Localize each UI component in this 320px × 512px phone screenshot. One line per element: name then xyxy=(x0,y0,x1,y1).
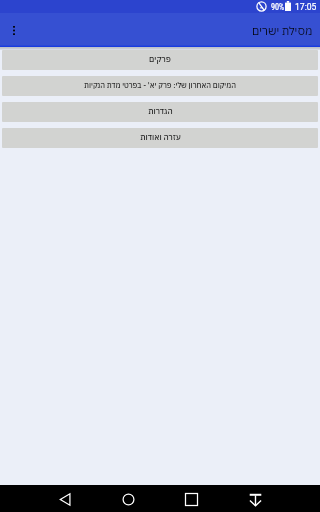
button[interactable]: Home xyxy=(116,487,140,511)
button[interactable]: Recent apps xyxy=(179,487,203,511)
staticText: 90% xyxy=(271,2,285,12)
staticText: עזרה ואודות xyxy=(140,132,181,142)
button[interactable]: המיקום האחרון שלי: פרק יא' - בפרטי מדת ה… xyxy=(2,76,318,96)
button[interactable]: More options xyxy=(5,22,22,39)
staticText: הגדרות xyxy=(148,106,173,116)
button[interactable]: הגדרות xyxy=(2,102,318,122)
staticText: פרקים xyxy=(149,54,171,64)
button[interactable]: Hide keyboard xyxy=(243,487,267,511)
button[interactable]: Back xyxy=(53,487,77,511)
button[interactable]: פרקים xyxy=(2,50,318,70)
staticText: מסילת ישרים xyxy=(252,23,313,38)
staticText: 17:05 xyxy=(295,2,317,12)
staticText: המיקום האחרון שלי: פרק יא' - בפרטי מדת ה… xyxy=(84,80,236,90)
button[interactable]: עזרה ואודות xyxy=(2,128,318,148)
